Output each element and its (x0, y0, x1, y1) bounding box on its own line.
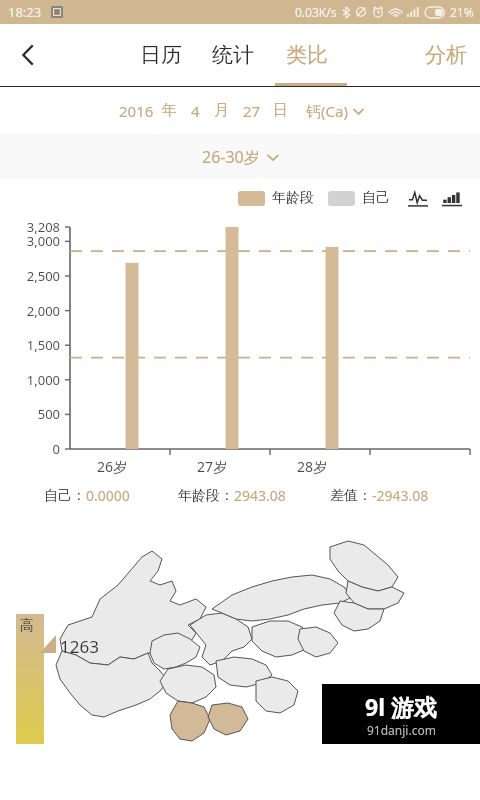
staticText: 500 (0, 405, 60, 423)
staticText: 日历 (140, 42, 182, 68)
staticText: 0.0000 (86, 486, 130, 505)
staticText: 0 (0, 440, 60, 458)
staticText: 高 (20, 617, 34, 635)
button[interactable]: 钙(Ca) (306, 101, 364, 121)
staticText: 28岁 (297, 457, 328, 476)
staticText: 91danji.com (367, 722, 436, 738)
staticText: 年 (162, 101, 177, 120)
staticText: 钙(Ca) (306, 101, 348, 121)
button[interactable]: Back (0, 24, 56, 86)
staticText: 2,000 (0, 302, 60, 320)
button[interactable]: Bar chart (440, 186, 464, 210)
staticText: 2,500 (0, 267, 60, 285)
staticText: 18:23 (8, 3, 42, 21)
button[interactable]: Line chart (406, 186, 430, 210)
button[interactable]: 统计 (212, 24, 254, 86)
button[interactable]: 2016 (117, 101, 156, 121)
staticText: 日 (273, 101, 288, 120)
staticText: 统计 (212, 42, 254, 68)
staticText: 1263 (60, 635, 99, 658)
staticText: 月 (214, 101, 229, 120)
staticText: 3,000 (0, 232, 60, 250)
staticText: 21% (450, 4, 474, 20)
staticText: 1,500 (0, 336, 60, 354)
staticText: 自己： (44, 487, 86, 505)
button[interactable]: 类比 (286, 24, 328, 86)
staticText: 26岁 (97, 457, 128, 476)
staticText: 分析 (425, 42, 467, 68)
staticText: 27岁 (197, 457, 228, 476)
staticText: 年龄段 (272, 189, 314, 207)
staticText: 4 (191, 101, 200, 121)
staticText: 2016 (119, 101, 154, 121)
staticText: 自己 (362, 189, 390, 207)
button[interactable]: 自己 (328, 189, 390, 207)
staticText: 0.03K/s (295, 4, 337, 20)
button[interactable]: 27 (241, 101, 263, 121)
staticText: 1,000 (0, 371, 60, 389)
staticText: 类比 (286, 42, 328, 68)
staticText: 3,208 (0, 218, 60, 236)
button[interactable]: 4 (189, 101, 202, 121)
staticText: 26-30岁 (202, 146, 260, 168)
button[interactable]: 日历 (140, 24, 182, 86)
staticText: 27 (243, 101, 261, 121)
button[interactable]: 年龄段 (238, 189, 314, 207)
staticText: 9l 游戏 (365, 691, 437, 722)
staticText: 差值： (330, 487, 372, 505)
staticText: -2943.08 (372, 486, 429, 505)
staticText: 2943.08 (234, 486, 286, 505)
button[interactable]: 26-30岁 (0, 134, 480, 179)
button[interactable]: 分析 (425, 24, 467, 86)
staticText: 年龄段： (178, 487, 234, 505)
